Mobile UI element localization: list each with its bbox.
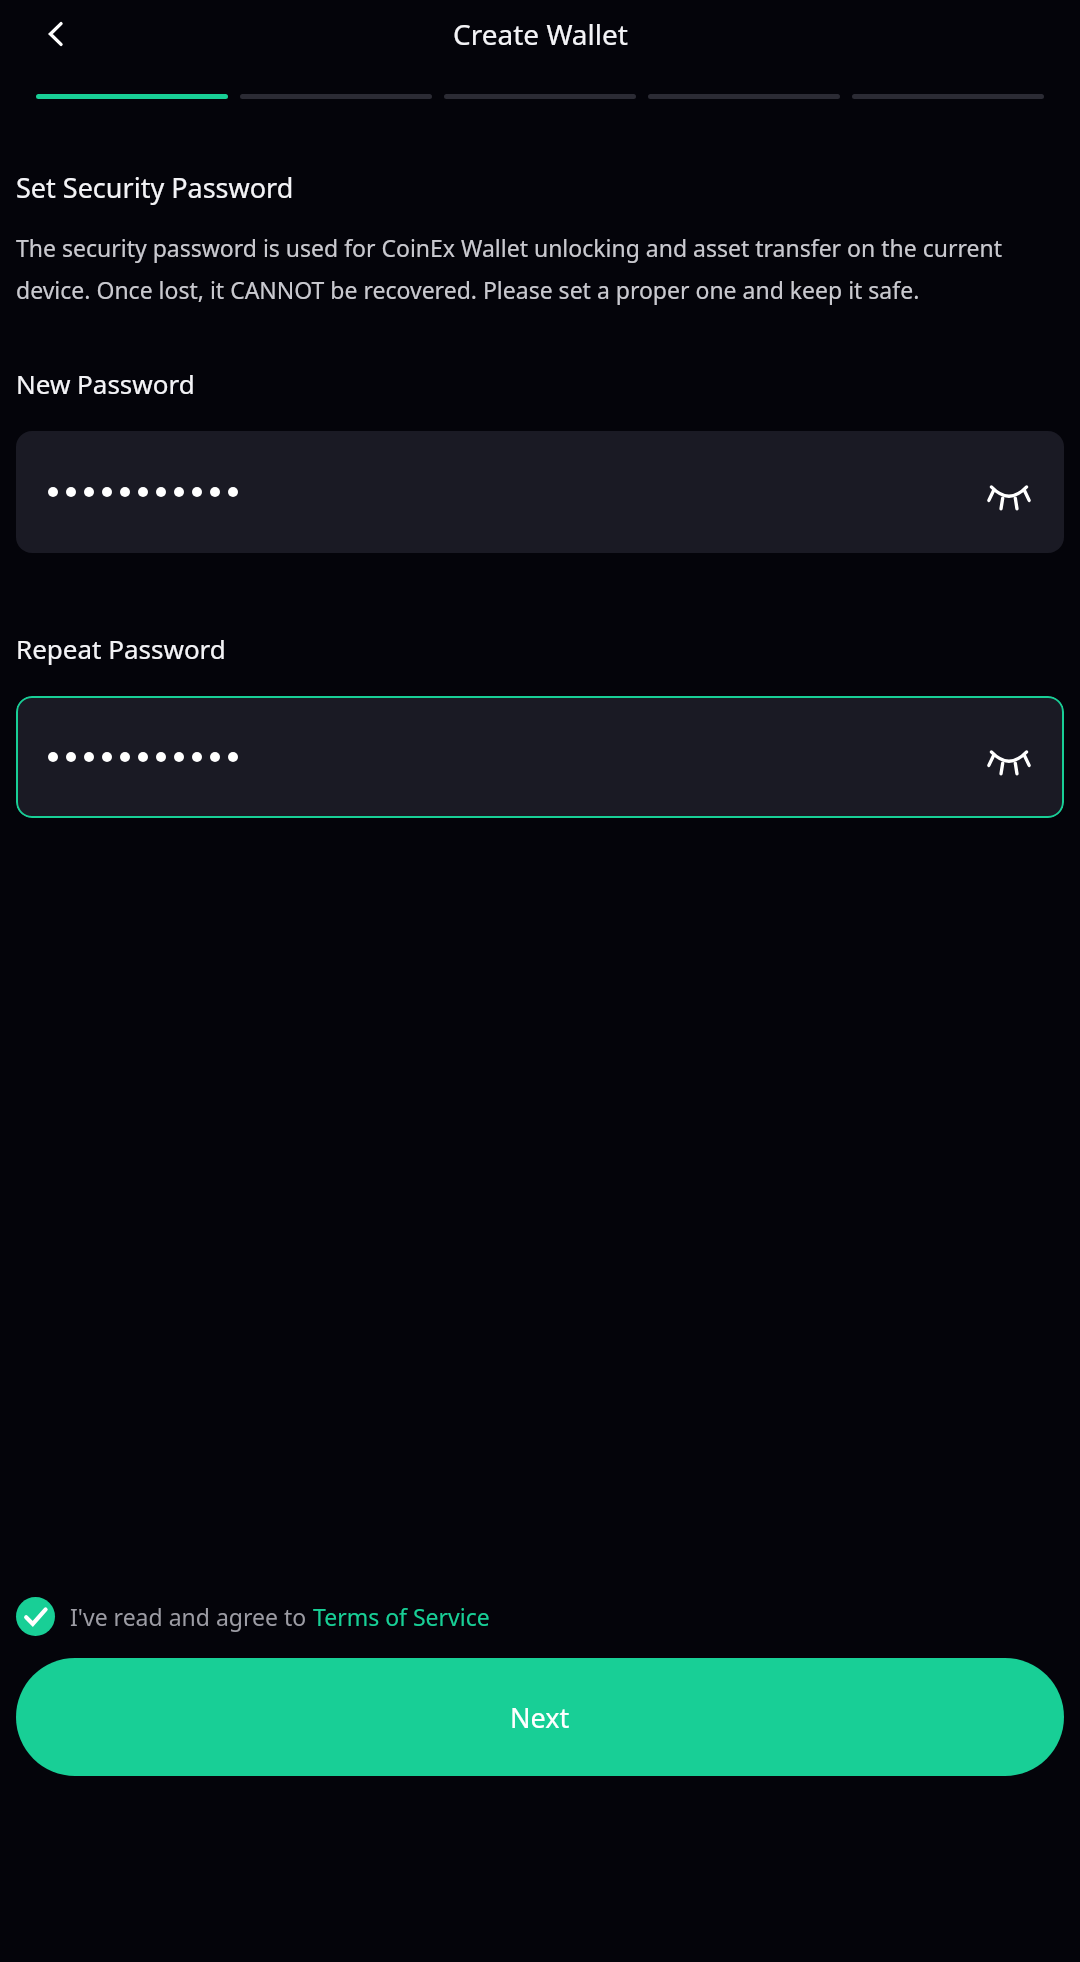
button[interactable]: Show password xyxy=(980,463,1038,521)
button[interactable]: Show password xyxy=(980,728,1038,786)
button[interactable]: I've read and agree to xyxy=(16,1591,490,1642)
button[interactable]: Terms of Service xyxy=(313,1601,490,1632)
staticText: Set Security Password xyxy=(16,169,294,206)
staticText: Next xyxy=(510,1699,570,1736)
staticText: I've read and agree to xyxy=(70,1601,313,1632)
button[interactable]: Show password xyxy=(16,696,1064,818)
staticText: The security password is used for CoinEx… xyxy=(16,232,1064,306)
button[interactable]: Back xyxy=(30,8,82,60)
staticText: Create Wallet xyxy=(453,15,628,53)
button[interactable]: Next xyxy=(16,1658,1064,1776)
button[interactable]: Show password xyxy=(16,431,1064,553)
staticText: Terms of Service xyxy=(313,1601,490,1632)
staticText: Repeat Password xyxy=(16,631,226,666)
staticText: New Password xyxy=(16,366,195,401)
